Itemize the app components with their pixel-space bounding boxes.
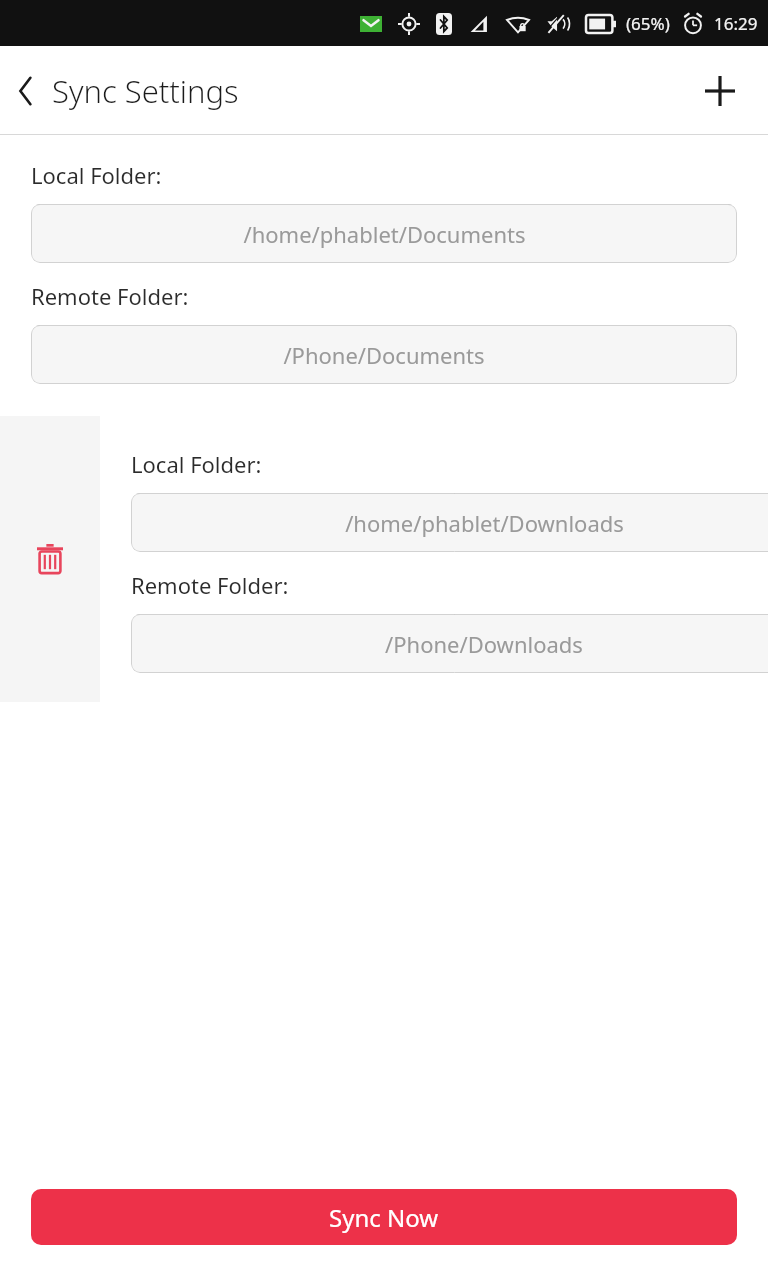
- button[interactable]: /home/phablet/Downloads: [131, 493, 768, 552]
- button[interactable]: /Phone/Downloads: [131, 614, 768, 673]
- staticText: /home/phablet/Documents: [243, 219, 526, 249]
- staticText: Sync Settings: [52, 70, 239, 112]
- staticText: Local Folder:: [131, 449, 262, 479]
- button[interactable]: Back: [0, 65, 52, 117]
- staticText: /Phone/Documents: [283, 340, 485, 370]
- staticText: (65%): [626, 12, 670, 35]
- staticText: Sync Now: [329, 1201, 439, 1234]
- staticText: Local Folder:: [31, 160, 162, 190]
- button[interactable]: /home/phablet/Documents: [31, 204, 737, 263]
- button[interactable]: /Phone/Documents: [31, 325, 737, 384]
- staticText: /home/phablet/Downloads: [345, 508, 624, 538]
- staticText: Remote Folder:: [31, 281, 189, 311]
- button[interactable]: Delete sync pair: [0, 416, 100, 702]
- button[interactable]: Sync Now: [31, 1189, 737, 1245]
- staticText: 16:29: [714, 12, 758, 35]
- button[interactable]: Add sync pair: [694, 65, 746, 117]
- staticText: Remote Folder:: [131, 570, 289, 600]
- staticText: /Phone/Downloads: [385, 629, 583, 659]
